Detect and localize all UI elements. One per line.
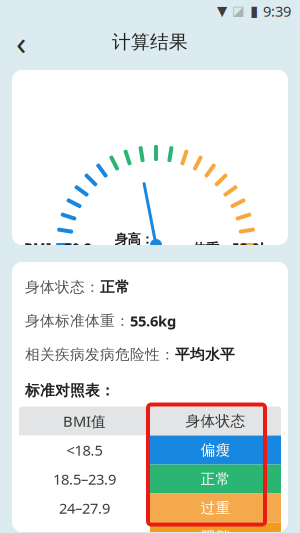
staticText: ‹ [16,20,26,64]
staticText: 相关疾病发病危险性： [25,345,175,363]
staticText: 24–27.9 [59,498,110,518]
staticText: 身体状态： [25,278,100,296]
staticText: 身体标准体重： [25,312,130,330]
staticText: 平均水平 [175,345,235,363]
staticText: 55.6kg [130,311,176,330]
staticText: 过重 [200,499,230,517]
button[interactable]: Back [0,22,42,62]
staticText: 偏瘦 [200,441,230,459]
staticText: ▮ [250,3,258,19]
staticText: 肥胖 [200,528,230,533]
staticText: ▼ [217,3,227,18]
staticText: >28 [72,527,96,533]
staticText: 18.5–23.9 [53,469,116,489]
staticText: 正常 [200,470,230,488]
staticText: BMI：20.2 [24,239,92,257]
staticText: ◪ [232,3,245,18]
staticText: 体重：53.0kg [193,239,276,257]
staticText: 身高：162.0cm [114,231,170,265]
staticText: 标准对照表： [25,381,115,399]
staticText: 9:39 [263,1,291,21]
staticText: 身体状态 [185,412,245,430]
staticText: <18.5 [66,440,102,460]
staticText: BMI值 [63,411,106,431]
staticText: 正常 [100,278,130,296]
staticText: 计算结果 [112,30,188,53]
